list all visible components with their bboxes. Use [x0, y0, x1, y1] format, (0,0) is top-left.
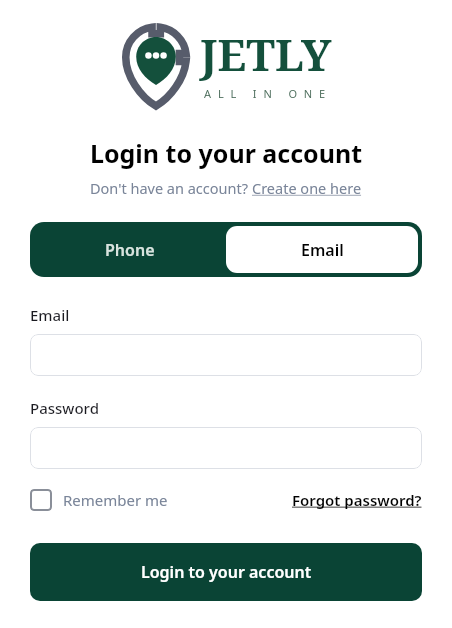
- button[interactable]: Remember me: [30, 489, 168, 511]
- staticText: Remember me: [63, 490, 168, 510]
- button[interactable]: Email: [226, 226, 418, 273]
- staticText: A L L I N O N E: [204, 86, 328, 101]
- staticText: Forgot password?: [292, 490, 422, 510]
- staticText: Create one here: [252, 178, 362, 198]
- staticText: Email: [30, 305, 70, 325]
- other: Jetly logo: [120, 22, 192, 110]
- staticText: Password: [30, 398, 99, 418]
- staticText: Phone: [105, 239, 155, 261]
- staticText: Login to your account: [0, 136, 452, 170]
- button[interactable]: Create one here: [252, 178, 362, 198]
- button[interactable]: Forgot password?: [292, 490, 422, 510]
- staticText: Login to your account: [141, 561, 312, 583]
- button[interactable]: [30, 427, 422, 469]
- button[interactable]: Phone: [34, 226, 226, 273]
- button[interactable]: [30, 334, 422, 376]
- staticText: Email: [301, 239, 344, 261]
- staticText: JETLY: [200, 24, 332, 84]
- button[interactable]: Login to your account: [30, 543, 422, 601]
- staticText: Don't have an account?: [90, 178, 252, 198]
